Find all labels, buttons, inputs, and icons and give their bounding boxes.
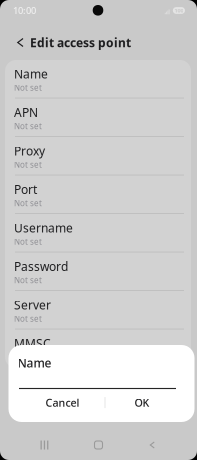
- staticText: Not set: [14, 82, 42, 93]
- button[interactable]: OK: [105, 394, 178, 411]
- button[interactable]: Password: [5, 252, 191, 291]
- staticText: Port: [14, 181, 37, 197]
- button[interactable]: Recents: [0, 436, 89, 454]
- staticText: Proxy: [14, 143, 45, 159]
- staticText: Username: [14, 220, 73, 236]
- button[interactable]: Name: [5, 60, 191, 98]
- staticText: Not set: [14, 121, 42, 131]
- staticText: OK: [134, 395, 149, 410]
- staticText: Name: [17, 355, 51, 371]
- staticText: APN: [14, 104, 38, 120]
- button[interactable]: Home: [89, 436, 107, 454]
- staticText: Not set: [14, 313, 42, 324]
- button[interactable]: Username: [5, 214, 191, 252]
- staticText: Not set: [14, 236, 42, 247]
- button[interactable]: Port: [5, 175, 191, 214]
- staticText: MMSC: [14, 335, 51, 351]
- staticText: Password: [14, 258, 68, 274]
- button[interactable]: Server: [5, 291, 191, 329]
- staticText: Server: [14, 297, 51, 313]
- staticText: 100: [174, 7, 183, 14]
- button[interactable]: Back: [107, 436, 197, 454]
- button[interactable]: MMSC: [5, 329, 191, 368]
- staticText: Not set: [14, 198, 42, 208]
- staticText: Edit access point: [30, 34, 131, 50]
- button[interactable]: Back: [9, 27, 30, 57]
- button[interactable]: APN: [5, 98, 191, 137]
- staticText: Not set: [14, 275, 42, 285]
- button[interactable]: Proxy: [5, 137, 191, 175]
- staticText: Not set: [14, 159, 42, 170]
- button[interactable]: Cancel: [20, 394, 104, 411]
- staticText: Not set: [14, 352, 42, 362]
- staticText: 10:00: [13, 4, 36, 17]
- staticText: Cancel: [45, 395, 79, 410]
- staticText: Name: [14, 66, 48, 82]
